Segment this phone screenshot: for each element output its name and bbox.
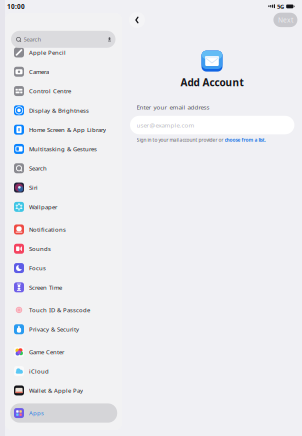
button[interactable]: Search	[11, 31, 115, 48]
staticText: Notifications	[29, 225, 66, 233]
staticText: Privacy & Security	[29, 325, 79, 333]
button[interactable]: Wallet & Apple Pay	[10, 381, 117, 400]
staticText: Screen Time	[29, 283, 62, 291]
button[interactable]: Next	[273, 13, 297, 27]
staticText: Multitasking & Gestures	[29, 145, 97, 153]
staticText: Next	[278, 15, 293, 24]
staticText: Sounds	[29, 245, 51, 253]
button[interactable]: Display & Brightness	[10, 101, 117, 120]
staticText: Sign in to your mail account provider or	[137, 137, 225, 143]
staticText: Touch ID & Passcode	[29, 306, 90, 314]
button[interactable]: Home Screen & App Library	[10, 120, 117, 139]
staticText: choose from a list.	[225, 137, 266, 143]
staticText: Display & Brightness	[29, 106, 89, 114]
staticText: Add Account	[180, 76, 243, 89]
button[interactable]: Apple Pencil	[10, 43, 117, 62]
staticText: Wallpaper	[29, 203, 57, 211]
staticText: Camera	[29, 68, 49, 76]
staticText: Enter your email address	[137, 103, 210, 111]
staticText: Control Centre	[29, 87, 71, 95]
button[interactable]: Siri	[10, 178, 117, 197]
button[interactable]: Privacy & Security	[10, 320, 117, 339]
button[interactable]: choose from a list.	[225, 137, 266, 143]
staticText: Siri	[29, 184, 38, 192]
button[interactable]: Focus	[10, 258, 117, 278]
button[interactable]: Camera	[10, 62, 117, 81]
button[interactable]: Wallpaper	[10, 197, 117, 216]
staticText: Apple Pencil	[29, 48, 66, 56]
staticText: iCloud	[29, 367, 49, 375]
button[interactable]: Back	[129, 12, 145, 28]
staticText: Search	[29, 164, 47, 172]
staticText: user@example.com	[137, 121, 195, 129]
button[interactable]: Multitasking & Gestures	[10, 139, 117, 159]
staticText: Wallet & Apple Pay	[29, 386, 83, 394]
button[interactable]: iCloud	[10, 361, 117, 381]
staticText: Apps	[29, 409, 44, 417]
button[interactable]: Sounds	[10, 239, 117, 258]
staticText: Game Center	[29, 348, 64, 356]
button[interactable]: Screen Time	[10, 278, 117, 297]
staticText: Focus	[29, 264, 46, 272]
button[interactable]: Control Centre	[10, 81, 117, 101]
button[interactable]: Apps	[10, 403, 117, 423]
staticText: Search	[23, 35, 41, 43]
button[interactable]: Touch ID & Passcode	[10, 300, 117, 320]
button[interactable]: Game Center	[10, 342, 117, 361]
staticText: 10:00	[7, 2, 25, 11]
button[interactable]: Notifications	[10, 220, 117, 239]
staticText: 5G	[277, 2, 284, 10]
button[interactable]: Search	[10, 159, 117, 178]
staticText: Home Screen & App Library	[29, 126, 106, 134]
